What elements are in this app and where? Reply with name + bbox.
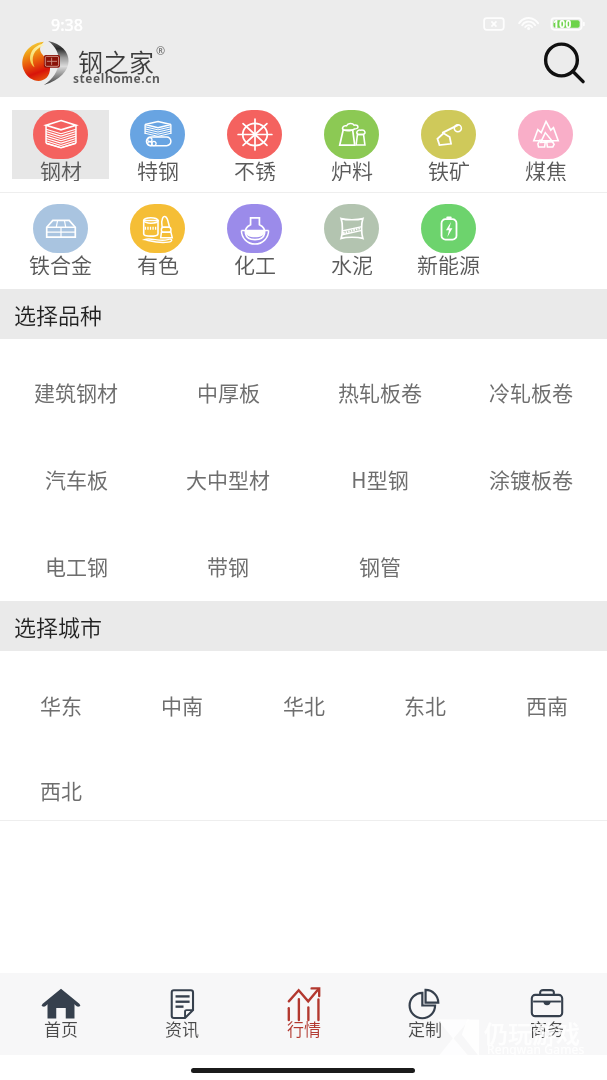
staticText: 新能源 (417, 249, 480, 275)
staticText: 华东 (40, 690, 82, 720)
staticText: H型钢 (351, 464, 409, 494)
staticText: 选择品种 (14, 298, 103, 330)
staticText: 西北 (40, 775, 82, 805)
button[interactable]: 华北 (243, 677, 364, 733)
staticText: 冷轧板卷 (489, 377, 573, 407)
staticText: 行情 (287, 1016, 321, 1038)
button[interactable] (12, 204, 109, 273)
staticText: 建筑钢材 (34, 377, 118, 407)
staticText: 中厚板 (197, 377, 260, 407)
staticText: 化工 (234, 249, 276, 275)
staticText: 特钢 (137, 155, 179, 181)
button[interactable]: 首页 (0, 973, 121, 1055)
button[interactable]: 汽车板 (0, 451, 152, 507)
staticText: 不锈 (234, 155, 276, 181)
staticText: 仍玩游戏 (484, 1015, 580, 1050)
button[interactable]: 带钢 (152, 538, 304, 594)
button[interactable] (109, 204, 206, 273)
staticText: 钢材 (40, 155, 82, 181)
button[interactable] (303, 110, 400, 179)
staticText: 钢之家 (78, 43, 155, 79)
staticText: 华北 (283, 690, 325, 720)
button[interactable] (303, 204, 400, 273)
staticText: 100 (553, 17, 572, 31)
button[interactable]: 资讯 (121, 973, 242, 1055)
button[interactable] (206, 110, 303, 179)
button[interactable]: 中南 (121, 677, 242, 733)
button[interactable]: Search (536, 34, 588, 86)
button[interactable]: 热轧板卷 (304, 364, 456, 420)
button[interactable]: 电工钢 (0, 538, 152, 594)
staticText: 热轧板卷 (338, 377, 422, 407)
staticText: 带钢 (207, 551, 249, 581)
staticText: 大中型材 (186, 464, 270, 494)
button[interactable]: 钢管 (304, 538, 456, 594)
staticText: 煤焦 (525, 155, 567, 181)
staticText: Rengwan Games (487, 1041, 585, 1057)
staticText: 中南 (161, 690, 203, 720)
staticText: 电工钢 (45, 551, 108, 581)
staticText: 东北 (404, 690, 446, 720)
button[interactable] (206, 204, 303, 273)
staticText: 炉料 (331, 155, 373, 181)
staticText: 有色 (137, 249, 179, 275)
staticText: 选择城市 (14, 610, 103, 642)
staticText: ® (156, 43, 166, 58)
button[interactable]: 中厚板 (152, 364, 304, 420)
button[interactable]: 建筑钢材 (0, 364, 152, 420)
button[interactable]: 华东 (0, 677, 121, 733)
staticText: 首页 (44, 1016, 78, 1038)
button[interactable]: 东北 (364, 677, 485, 733)
button[interactable] (400, 110, 497, 179)
staticText: 铁合金 (29, 249, 92, 275)
button[interactable]: 冷轧板卷 (455, 364, 607, 420)
staticText: 涂镀板卷 (489, 464, 573, 494)
staticText: 水泥 (331, 249, 373, 275)
button[interactable] (12, 110, 109, 179)
staticText: 定制 (408, 1016, 442, 1038)
staticText: steelhome.cn (73, 70, 161, 86)
staticText: 汽车板 (45, 464, 108, 494)
button[interactable] (400, 204, 497, 273)
button[interactable] (109, 110, 206, 179)
button[interactable]: 西北 (0, 762, 121, 818)
button[interactable]: H型钢 (304, 451, 456, 507)
staticText: 西南 (526, 690, 568, 720)
button[interactable]: 商务 (486, 973, 607, 1055)
button[interactable]: 定制 (364, 973, 485, 1055)
button[interactable]: 大中型材 (152, 451, 304, 507)
staticText: 商务 (530, 1016, 564, 1038)
button[interactable] (497, 110, 594, 179)
staticText: 9:38 (51, 14, 83, 36)
staticText: 钢管 (359, 551, 401, 581)
button[interactable]: 涂镀板卷 (455, 451, 607, 507)
button[interactable]: 西南 (486, 677, 607, 733)
staticText: 资讯 (165, 1016, 199, 1038)
staticText: 铁矿 (428, 155, 470, 181)
button[interactable]: 行情 (243, 973, 364, 1055)
